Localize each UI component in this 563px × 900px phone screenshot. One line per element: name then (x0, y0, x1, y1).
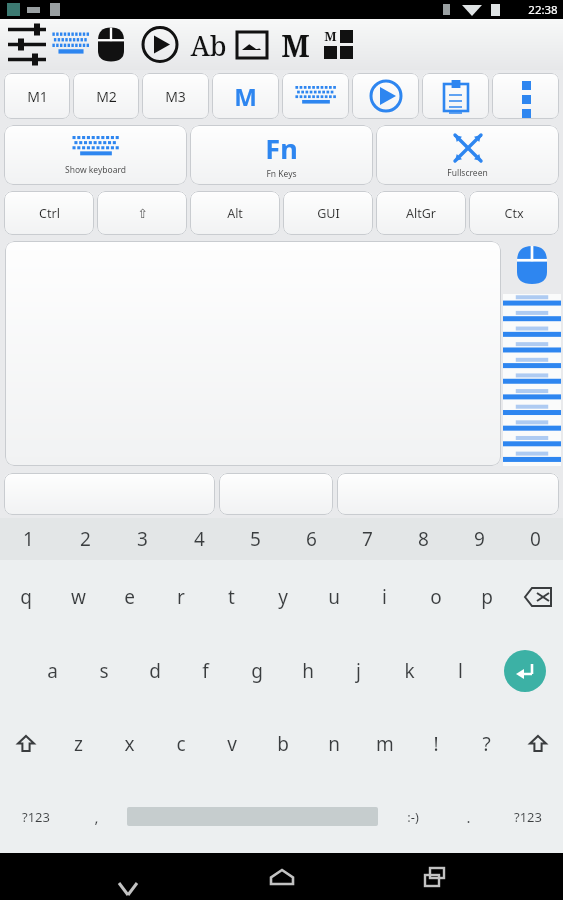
button[interactable]: Touchpad (5, 241, 501, 466)
button[interactable]: Macro (274, 23, 316, 67)
staticText: c (176, 731, 186, 757)
button[interactable]: y (257, 560, 308, 634)
button[interactable]: 6 (283, 518, 339, 560)
button[interactable]: x (104, 707, 155, 780)
staticText: y (278, 584, 288, 610)
staticText: k (404, 658, 415, 684)
staticText: M2 (96, 87, 117, 106)
button[interactable]: u (308, 560, 359, 634)
button[interactable]: M1 (4, 73, 70, 119)
button[interactable]: Ctrl (4, 191, 94, 235)
staticText: r (177, 584, 185, 610)
button[interactable]: ?123 (493, 780, 563, 853)
button[interactable]: 7 (339, 518, 395, 560)
button[interactable]: GUI (283, 191, 373, 235)
button[interactable]: h (282, 634, 333, 707)
button[interactable]: Macro (212, 73, 279, 119)
button[interactable]: 5 (227, 518, 283, 560)
button[interactable]: c (155, 707, 206, 780)
button[interactable]: Fn (190, 125, 373, 185)
button[interactable]: Macro grid (316, 23, 362, 67)
staticText: u (328, 584, 340, 610)
button[interactable]: More options (492, 73, 559, 119)
button[interactable]: n (308, 707, 359, 780)
button[interactable]: Clipboard (422, 73, 489, 119)
staticText: Show keyboard (65, 164, 126, 176)
button[interactable]: d (129, 634, 180, 707)
button[interactable]: Shift (0, 707, 52, 780)
staticText: Alt (227, 205, 243, 222)
button[interactable]: z (52, 707, 104, 780)
button[interactable]: l (435, 634, 486, 707)
button[interactable]: k (384, 634, 435, 707)
button[interactable]: 8 (395, 518, 451, 560)
staticText: GUI (317, 205, 340, 222)
button[interactable]: v (206, 707, 257, 780)
button[interactable]: o (410, 560, 461, 634)
staticText: M (281, 25, 310, 66)
button[interactable]: 3 (114, 518, 171, 560)
button[interactable]: Home (257, 853, 307, 900)
button[interactable]: r (155, 560, 206, 634)
button[interactable]: ⇧ (97, 191, 187, 235)
button[interactable]: Mouse mode (513, 244, 551, 290)
staticText: Fullscreen (447, 167, 488, 179)
button[interactable]: s (78, 634, 129, 707)
button[interactable]: ? (461, 707, 512, 780)
button[interactable]: w (52, 560, 104, 634)
button[interactable]: p (461, 560, 512, 634)
button[interactable]: Ctx (469, 191, 559, 235)
staticText: AltGr (406, 205, 436, 222)
button[interactable]: Space (122, 780, 383, 853)
button[interactable]: Play (352, 73, 419, 119)
button[interactable]: m (359, 707, 410, 780)
staticText: ?123 (22, 808, 50, 826)
button[interactable]: Shift (512, 707, 563, 780)
button[interactable]: 2 (57, 518, 114, 560)
button[interactable]: Backspace (512, 560, 563, 634)
button[interactable]: Fullscreen (376, 125, 559, 185)
button[interactable]: Keyboard (282, 73, 349, 119)
staticText: x (124, 731, 135, 757)
button[interactable]: q (0, 560, 52, 634)
button[interactable]: ?123 (0, 780, 71, 853)
button[interactable]: , (71, 780, 122, 853)
button[interactable]: Text (186, 23, 230, 67)
staticText: s (99, 658, 109, 684)
button[interactable]: i (359, 560, 410, 634)
button[interactable]: Show keyboard (4, 125, 187, 185)
button[interactable]: j (333, 634, 384, 707)
button[interactable]: Image (230, 23, 274, 67)
button[interactable]: 9 (451, 518, 507, 560)
button[interactable]: b (257, 707, 308, 780)
button[interactable]: g (231, 634, 282, 707)
button[interactable]: M3 (142, 73, 209, 119)
button[interactable]: AltGr (376, 191, 466, 235)
staticText: Ctx (504, 205, 524, 222)
staticText: i (382, 584, 387, 610)
button[interactable]: Scroll wheel (503, 294, 561, 466)
button[interactable]: t (206, 560, 257, 634)
button[interactable]: M2 (73, 73, 139, 119)
staticText: 1 (23, 526, 34, 552)
button[interactable]: 4 (171, 518, 227, 560)
button[interactable]: a (27, 634, 78, 707)
button[interactable]: Right click (337, 473, 559, 515)
button[interactable]: ! (410, 707, 461, 780)
button[interactable]: Middle click (219, 473, 333, 515)
button[interactable]: e (104, 560, 155, 634)
button[interactable]: 0 (507, 518, 563, 560)
button[interactable]: Left click (4, 473, 215, 515)
button[interactable]: Enter (486, 634, 563, 707)
staticText: h (302, 658, 314, 684)
button[interactable]: . (443, 780, 493, 853)
staticText: 3 (137, 526, 148, 552)
staticText: Ab (190, 27, 227, 64)
button[interactable]: f (180, 634, 231, 707)
button[interactable]: Alt (190, 191, 280, 235)
button[interactable]: :-) (383, 780, 443, 853)
button[interactable]: 1 (0, 518, 57, 560)
button[interactable]: Hide keyboard (103, 853, 153, 900)
staticText: 7 (362, 526, 373, 552)
button[interactable]: Recent apps (410, 853, 460, 900)
